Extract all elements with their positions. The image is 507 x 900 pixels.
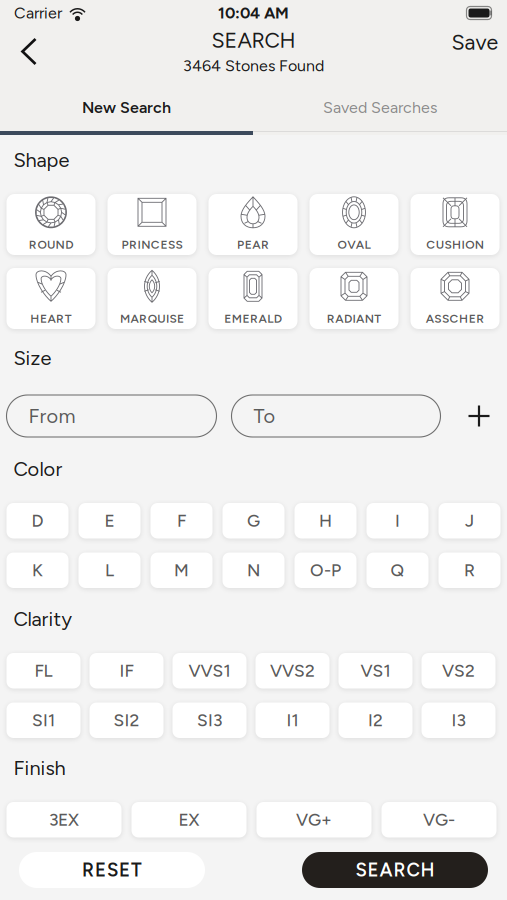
staticText: 3464 Stones Found xyxy=(183,56,324,75)
button[interactable]: SI1 xyxy=(6,702,80,738)
staticText: HEART xyxy=(30,311,72,326)
staticText: To xyxy=(253,404,275,428)
button[interactable]: FL xyxy=(6,653,80,688)
button[interactable]: D xyxy=(6,503,68,538)
button[interactable]: VVS2 xyxy=(255,653,329,688)
staticText: Finish xyxy=(13,756,65,780)
button[interactable]: Back xyxy=(7,27,51,81)
button[interactable]: J xyxy=(438,503,500,538)
staticText: Carrier xyxy=(14,3,62,23)
staticText: SEARCH xyxy=(355,859,434,881)
staticText: SI2 xyxy=(113,710,139,731)
button[interactable]: SEARCH xyxy=(302,852,488,888)
staticText: PRINCESS xyxy=(121,237,183,252)
staticText: IF xyxy=(119,660,133,681)
staticText: Clarity xyxy=(13,607,72,631)
button[interactable]: M xyxy=(150,552,212,588)
staticText: PEAR xyxy=(237,237,269,252)
button[interactable]: CUSHION xyxy=(410,194,499,255)
button[interactable]: PRINCESS xyxy=(107,194,196,255)
staticText: VVS2 xyxy=(270,660,315,681)
button[interactable]: Add size range xyxy=(466,403,491,428)
button[interactable]: RADIANT xyxy=(309,268,398,329)
staticText: MARQUISE xyxy=(120,311,184,326)
staticText: 10:04 AM xyxy=(218,3,289,23)
staticText: I xyxy=(395,510,400,531)
button[interactable]: VG- xyxy=(381,802,496,837)
button[interactable]: I3 xyxy=(421,702,495,738)
staticText: RESET xyxy=(82,859,142,881)
staticText: O-P xyxy=(310,560,341,581)
button[interactable]: EMERALD xyxy=(208,268,297,329)
button[interactable]: From xyxy=(6,395,216,437)
staticText: RADIANT xyxy=(327,311,381,326)
staticText: Size xyxy=(13,346,51,370)
button[interactable]: SI2 xyxy=(89,702,163,738)
button[interactable]: F xyxy=(150,503,212,538)
staticText: I3 xyxy=(451,710,465,731)
button[interactable]: To xyxy=(231,395,440,437)
staticText: K xyxy=(32,560,43,581)
staticText: New Search xyxy=(82,98,171,117)
staticText: Q xyxy=(390,560,404,581)
button[interactable]: VS2 xyxy=(421,653,495,688)
button[interactable]: HEART xyxy=(6,268,95,329)
staticText: R xyxy=(464,560,475,581)
button[interactable]: I2 xyxy=(338,702,412,738)
staticText: I2 xyxy=(368,710,383,731)
button[interactable]: OVAL xyxy=(309,194,398,255)
button[interactable]: R xyxy=(438,552,500,588)
staticText: ASSCHER xyxy=(426,311,484,326)
staticText: From xyxy=(28,404,75,428)
button[interactable]: VVS1 xyxy=(172,653,246,688)
button[interactable]: PEAR xyxy=(208,194,297,255)
button[interactable]: Saved Searches xyxy=(253,83,507,135)
button[interactable]: H xyxy=(294,503,356,538)
staticText: VG+ xyxy=(296,809,332,830)
button[interactable]: 3EX xyxy=(6,802,121,837)
staticText: EMERALD xyxy=(224,311,282,326)
button[interactable]: L xyxy=(78,552,140,588)
staticText: VS1 xyxy=(360,660,390,681)
button[interactable]: I xyxy=(366,503,428,538)
button[interactable]: EX xyxy=(131,802,246,837)
button[interactable]: VG+ xyxy=(256,802,371,837)
button[interactable]: I1 xyxy=(255,702,329,738)
button[interactable]: RESET xyxy=(19,852,205,888)
staticText: SI3 xyxy=(197,710,222,731)
staticText: J xyxy=(465,510,474,531)
staticText: Save xyxy=(451,29,498,55)
staticText: D xyxy=(31,510,43,531)
button[interactable]: IF xyxy=(89,653,163,688)
button[interactable]: VS1 xyxy=(338,653,412,688)
staticText: Color xyxy=(13,457,62,481)
button[interactable]: O-P xyxy=(294,552,356,588)
staticText: M xyxy=(174,560,189,581)
button[interactable]: Q xyxy=(366,552,428,588)
button[interactable]: MARQUISE xyxy=(107,268,196,329)
staticText: F xyxy=(177,510,186,531)
staticText: CUSHION xyxy=(426,237,484,252)
staticText: SEARCH xyxy=(211,27,295,53)
staticText: VG- xyxy=(423,809,455,830)
staticText: ROUND xyxy=(29,237,73,252)
button[interactable]: N xyxy=(222,552,284,588)
staticText: EX xyxy=(178,809,199,830)
staticText: G xyxy=(247,510,260,531)
button[interactable]: G xyxy=(222,503,284,538)
staticText: I1 xyxy=(286,710,298,731)
button[interactable]: ROUND xyxy=(6,194,95,255)
staticText: SI1 xyxy=(32,710,55,731)
button[interactable]: Save xyxy=(444,27,506,81)
button[interactable]: K xyxy=(6,552,68,588)
staticText: VS2 xyxy=(442,660,475,681)
staticText: N xyxy=(247,560,260,581)
staticText: 3EX xyxy=(49,809,79,830)
staticText: Shape xyxy=(13,148,69,172)
button[interactable]: ASSCHER xyxy=(410,268,499,329)
staticText: FL xyxy=(34,660,52,681)
staticText: Saved Searches xyxy=(323,98,437,117)
button[interactable]: E xyxy=(78,503,140,538)
button[interactable]: New Search xyxy=(0,83,253,135)
button[interactable]: SI3 xyxy=(172,702,246,738)
